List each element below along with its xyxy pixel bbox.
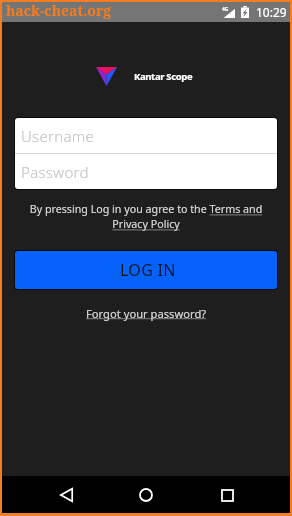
button[interactable]: Home (129, 478, 163, 512)
button[interactable]: LOG IN (15, 251, 277, 289)
button[interactable]: Forgot your password? (81, 303, 212, 324)
staticText: LOG IN (120, 259, 176, 281)
staticText: Username (21, 126, 95, 146)
staticText: By pressing Log in you agree to the Term… (16, 202, 276, 232)
staticText: 10:29 (256, 4, 287, 20)
button[interactable]: Username (15, 118, 277, 153)
staticText: Password (21, 162, 89, 182)
button[interactable]: Password (15, 154, 277, 189)
staticText: Kantar Scope (134, 70, 193, 83)
button[interactable]: Back (49, 478, 83, 512)
staticText: hack-cheat.org (6, 1, 112, 20)
button[interactable]: Recent apps (210, 478, 244, 512)
staticText: 4G (222, 6, 229, 13)
